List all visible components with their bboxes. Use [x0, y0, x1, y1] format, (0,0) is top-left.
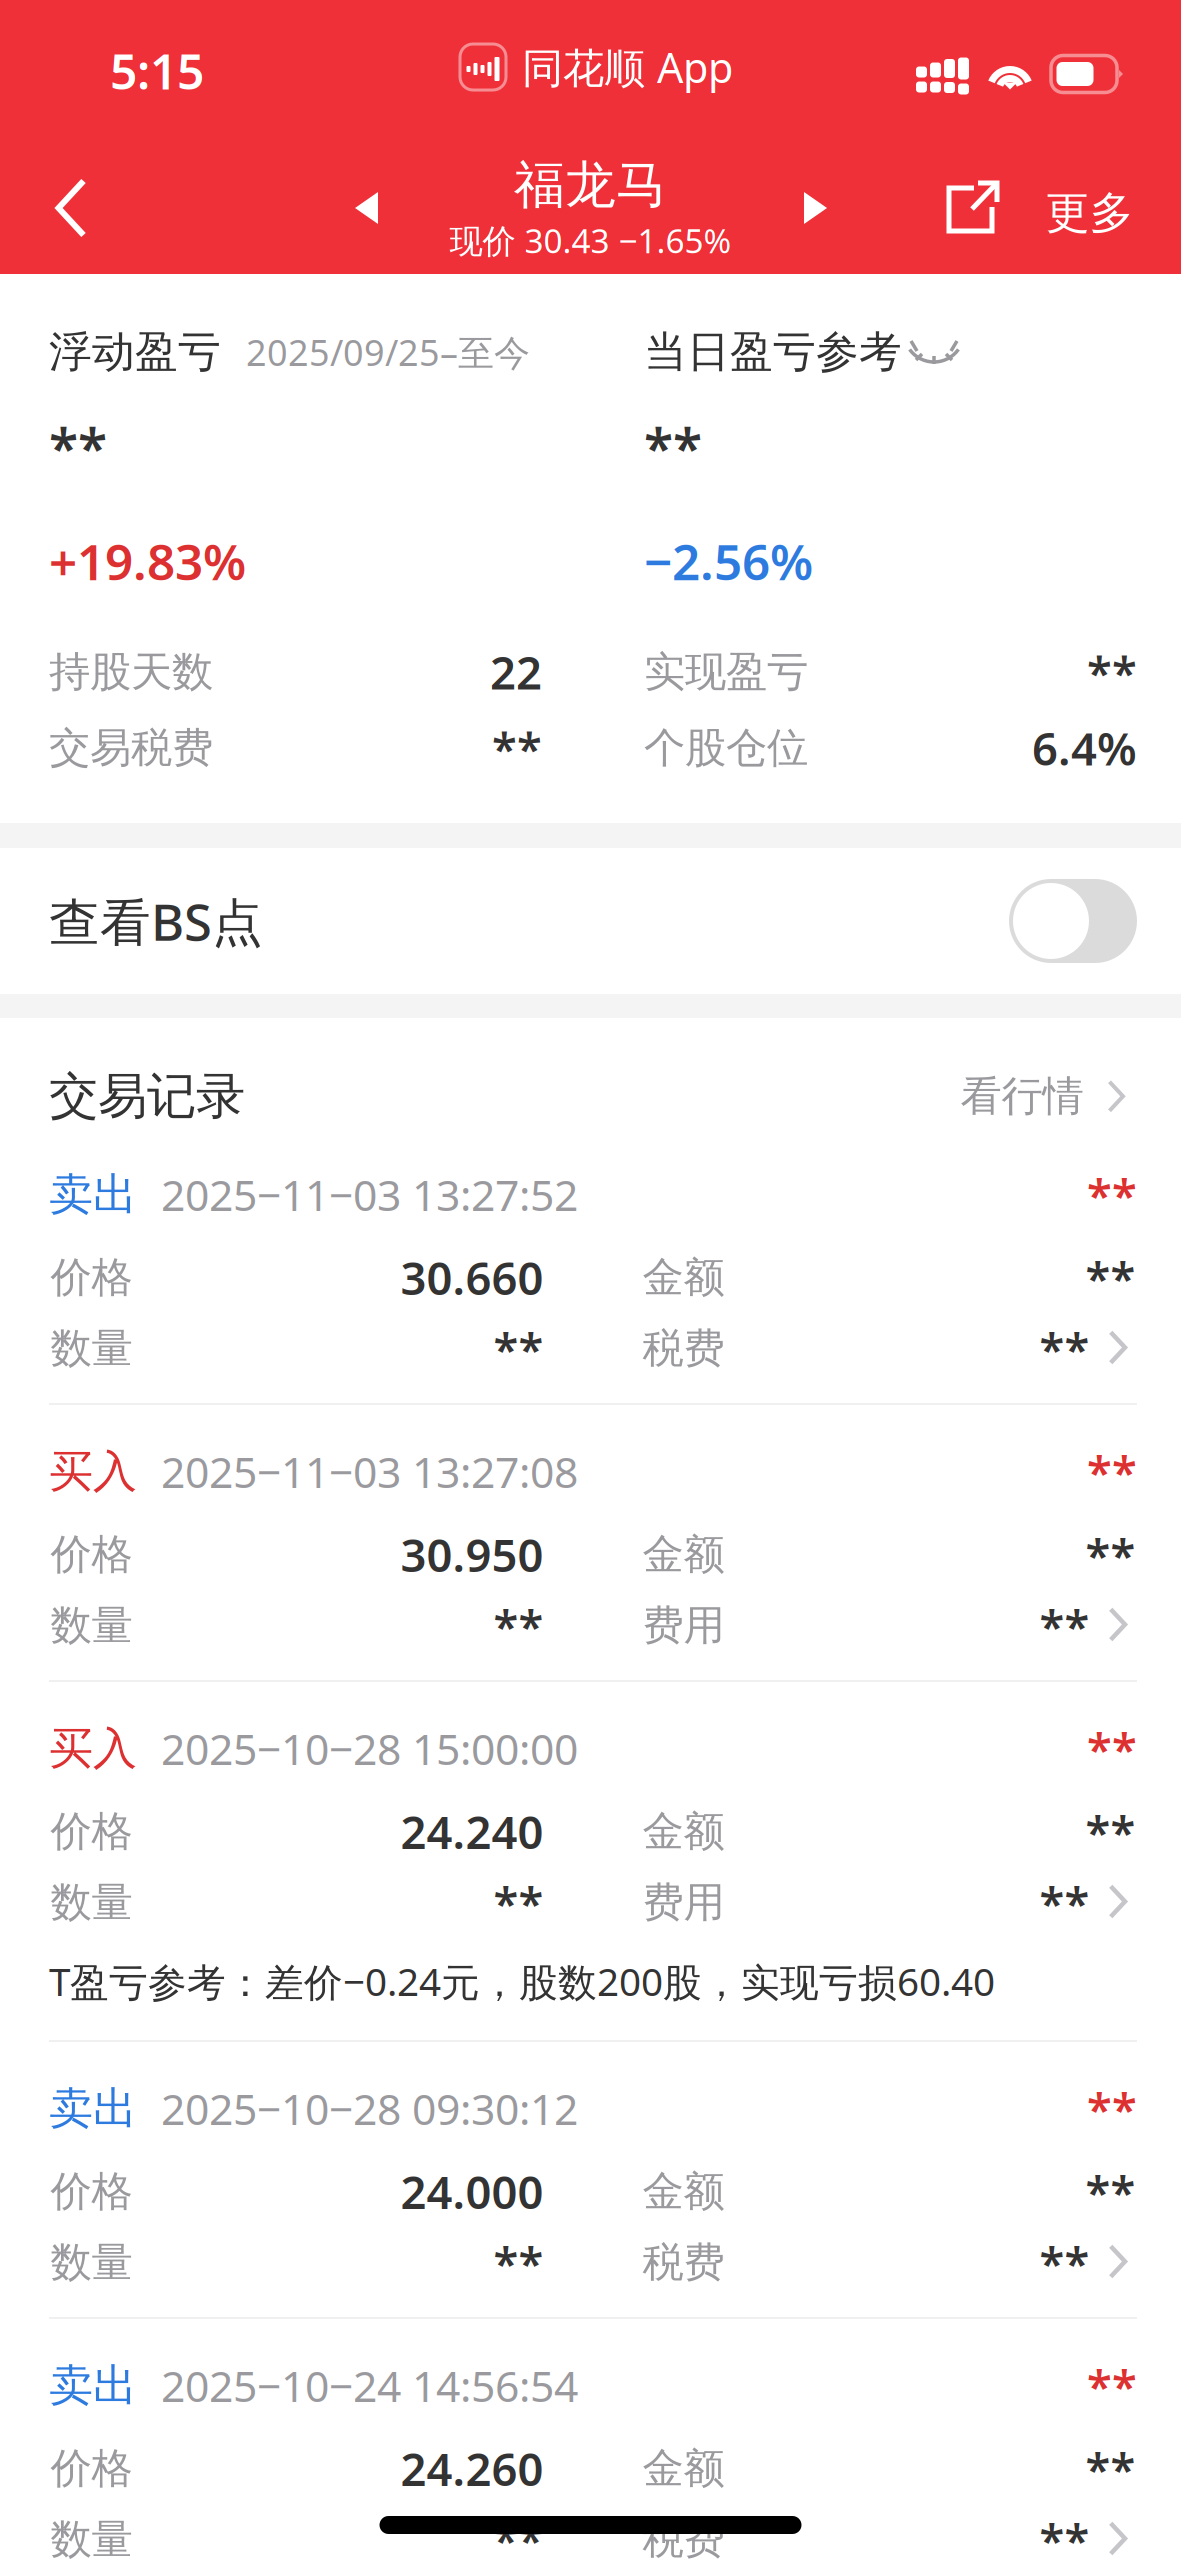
staticText: ** — [1087, 642, 1137, 702]
staticText: 5:15 — [110, 39, 204, 103]
staticText: ** — [492, 718, 542, 778]
staticText: 交易税费 — [49, 723, 213, 773]
staticText: 2025−11−03 13:27:08 — [161, 1443, 578, 1500]
staticText: 数量 — [50, 2237, 132, 2288]
staticText: 数量 — [50, 2514, 132, 2559]
staticText: 看行情 — [960, 1071, 1083, 1122]
button[interactable]: 买入 — [0, 1405, 1181, 1680]
staticText: 交易记录 — [49, 1066, 245, 1127]
staticText: 卖出 — [49, 2081, 137, 2135]
staticText: 2025−11−03 13:27:52 — [161, 1166, 578, 1223]
staticText: 金额 — [642, 2443, 724, 2494]
staticText: 实现盈亏 — [644, 647, 808, 697]
staticText: ** — [493, 2232, 543, 2293]
button[interactable]: Back — [16, 131, 126, 285]
staticText: 2025/09/25–至今 — [246, 328, 530, 376]
staticText: +19.83% — [49, 528, 246, 594]
staticText: 金额 — [642, 1806, 724, 1857]
staticText: ** — [1085, 1801, 1135, 1862]
button[interactable]: 看行情 — [960, 1071, 1126, 1122]
staticText: 价格 — [50, 2166, 132, 2217]
staticText: 卖出 — [49, 2358, 137, 2412]
staticText: ** — [1087, 2078, 1137, 2139]
staticText: 2025−10−28 15:00:00 — [161, 1720, 578, 1777]
staticText: ** — [1039, 2509, 1089, 2559]
staticText: ** — [1085, 1524, 1135, 1585]
button[interactable]: 卖出 — [0, 2319, 1181, 2559]
staticText: 浮动盈亏 — [49, 326, 221, 378]
staticText: ** — [493, 2509, 543, 2559]
staticText: −2.56% — [644, 528, 813, 594]
staticText: 当日盈亏参考 — [644, 326, 902, 378]
staticText: 卖出 — [49, 1167, 137, 1221]
staticText: 税费 — [642, 1323, 724, 1374]
button[interactable]: Share — [918, 130, 1028, 284]
button[interactable]: 更多 — [1038, 136, 1141, 290]
staticText: ** — [1087, 1164, 1137, 1225]
button[interactable]: 查看BS点 — [0, 848, 1181, 994]
staticText: 金额 — [642, 1529, 724, 1580]
button[interactable]: Next stock — [761, 131, 871, 285]
staticText: 24.000 — [400, 2161, 543, 2222]
staticText: ** — [493, 1872, 543, 1933]
staticText: 税费 — [642, 2237, 724, 2288]
staticText: 24.240 — [400, 1801, 543, 1862]
staticText: 24.260 — [400, 2438, 543, 2499]
staticText: ** — [1087, 1718, 1137, 1779]
staticText: 现价 30.43 −1.65% — [449, 218, 731, 262]
staticText: ** — [493, 1595, 543, 1656]
staticText: ** — [1085, 1247, 1135, 1308]
staticText: 税费 — [642, 2514, 724, 2559]
staticText: 2025−10−24 14:56:54 — [161, 2357, 578, 2414]
staticText: ** — [1039, 1318, 1089, 1379]
staticText: 价格 — [50, 2443, 132, 2494]
staticText: 数量 — [50, 1877, 132, 1928]
staticText: 金额 — [642, 1252, 724, 1303]
staticText: 更多 — [1045, 186, 1133, 240]
staticText: 查看BS点 — [49, 887, 263, 955]
staticText: 买入 — [49, 1721, 137, 1775]
staticText: 30.950 — [400, 1524, 543, 1585]
staticText: 个股仓位 — [644, 723, 808, 773]
staticText: 6.4% — [1032, 718, 1137, 778]
staticText: 价格 — [50, 1252, 132, 1303]
staticText: 价格 — [50, 1806, 132, 1857]
staticText: 30.660 — [400, 1247, 543, 1308]
staticText: T盈亏参考：差价−0.24元，股数200股，实现亏损60.40 — [49, 1955, 995, 2007]
staticText: ** — [1039, 1872, 1089, 1933]
staticText: 买入 — [49, 1444, 137, 1498]
staticText: 价格 — [50, 1529, 132, 1580]
staticText: 2025−10−28 09:30:12 — [161, 2080, 578, 2137]
staticText: ** — [1087, 1441, 1137, 1502]
staticText: 数量 — [50, 1600, 132, 1651]
button[interactable]: 卖出 — [0, 1128, 1181, 1403]
staticText: ** — [1087, 2355, 1137, 2416]
staticText: 费用 — [642, 1600, 724, 1651]
staticText: ** — [1085, 2161, 1135, 2222]
staticText: ** — [644, 412, 702, 482]
staticText: ** — [49, 412, 107, 482]
staticText: 22 — [490, 642, 542, 702]
staticText: 同花顺 App — [522, 40, 733, 94]
staticText: ** — [1085, 2438, 1135, 2499]
staticText: 金额 — [642, 2166, 724, 2217]
staticText: ** — [1039, 1595, 1089, 1656]
staticText: ** — [1039, 2232, 1089, 2293]
staticText: 持股天数 — [49, 647, 213, 697]
button[interactable]: Previous stock — [311, 131, 421, 285]
staticText: ** — [493, 1318, 543, 1379]
staticText: 福龙马 — [514, 154, 667, 216]
button[interactable]: 买入 — [0, 1682, 1181, 1957]
staticText: 数量 — [50, 1323, 132, 1374]
staticText: 费用 — [642, 1877, 724, 1928]
button[interactable]: 卖出 — [0, 2042, 1181, 2317]
